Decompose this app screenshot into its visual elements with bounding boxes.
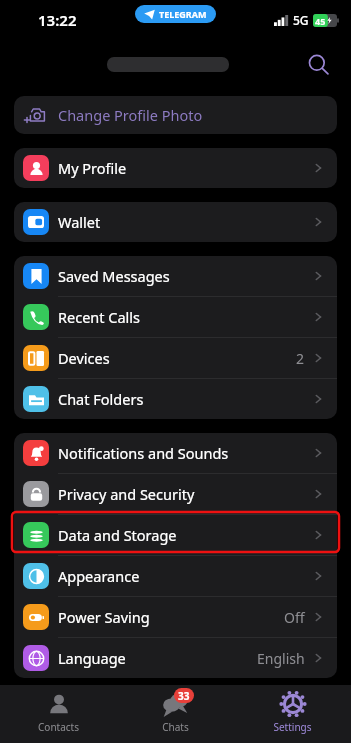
staticText: 13:22 bbox=[38, 10, 77, 30]
staticText: Settings bbox=[273, 720, 312, 734]
button[interactable]: Search bbox=[299, 45, 337, 83]
staticText: Power Saving bbox=[58, 607, 150, 627]
staticText: Recent Calls bbox=[58, 307, 141, 327]
staticText: Chats bbox=[162, 720, 189, 734]
button[interactable]: Devices bbox=[14, 338, 337, 378]
staticText: Data and Storage bbox=[58, 525, 177, 545]
staticText: 45 bbox=[315, 15, 326, 27]
button[interactable]: Contacts bbox=[0, 685, 117, 743]
button[interactable]: My Profile bbox=[14, 148, 337, 188]
button[interactable]: Data and Storage bbox=[14, 515, 337, 555]
button[interactable]: Change Profile Photo bbox=[14, 96, 337, 134]
button[interactable]: Language bbox=[14, 638, 337, 678]
staticText: My Profile bbox=[58, 158, 127, 178]
staticText: Appearance bbox=[58, 566, 140, 586]
staticText: Devices bbox=[58, 348, 110, 368]
staticText: Contacts bbox=[38, 720, 79, 734]
staticText: 2 bbox=[296, 349, 305, 368]
staticText: Notifications and Sounds bbox=[58, 443, 229, 463]
button[interactable]: Wallet bbox=[14, 202, 337, 242]
button[interactable]: Notifications and Sounds bbox=[14, 433, 337, 473]
staticText: Off bbox=[284, 608, 305, 627]
staticText: Saved Messages bbox=[58, 266, 170, 286]
staticText: Privacy and Security bbox=[58, 484, 195, 504]
button[interactable]: Appearance bbox=[14, 556, 337, 596]
staticText: Change Profile Photo bbox=[58, 105, 203, 125]
button[interactable]: Chat Folders bbox=[14, 379, 337, 419]
staticText: Language bbox=[58, 648, 126, 668]
staticText: 33 bbox=[178, 689, 190, 703]
staticText: Wallet bbox=[58, 212, 101, 232]
button[interactable]: Settings bbox=[234, 685, 351, 743]
button[interactable]: Saved Messages bbox=[14, 256, 337, 296]
staticText: TELEGRAM bbox=[159, 8, 207, 20]
button[interactable]: Power Saving bbox=[14, 597, 337, 637]
button[interactable]: Privacy and Security bbox=[14, 474, 337, 514]
staticText: English bbox=[257, 649, 305, 668]
staticText: 5G bbox=[293, 12, 309, 28]
button[interactable]: 33 bbox=[117, 685, 234, 743]
staticText: Chat Folders bbox=[58, 389, 144, 409]
button[interactable]: Recent Calls bbox=[14, 297, 337, 337]
